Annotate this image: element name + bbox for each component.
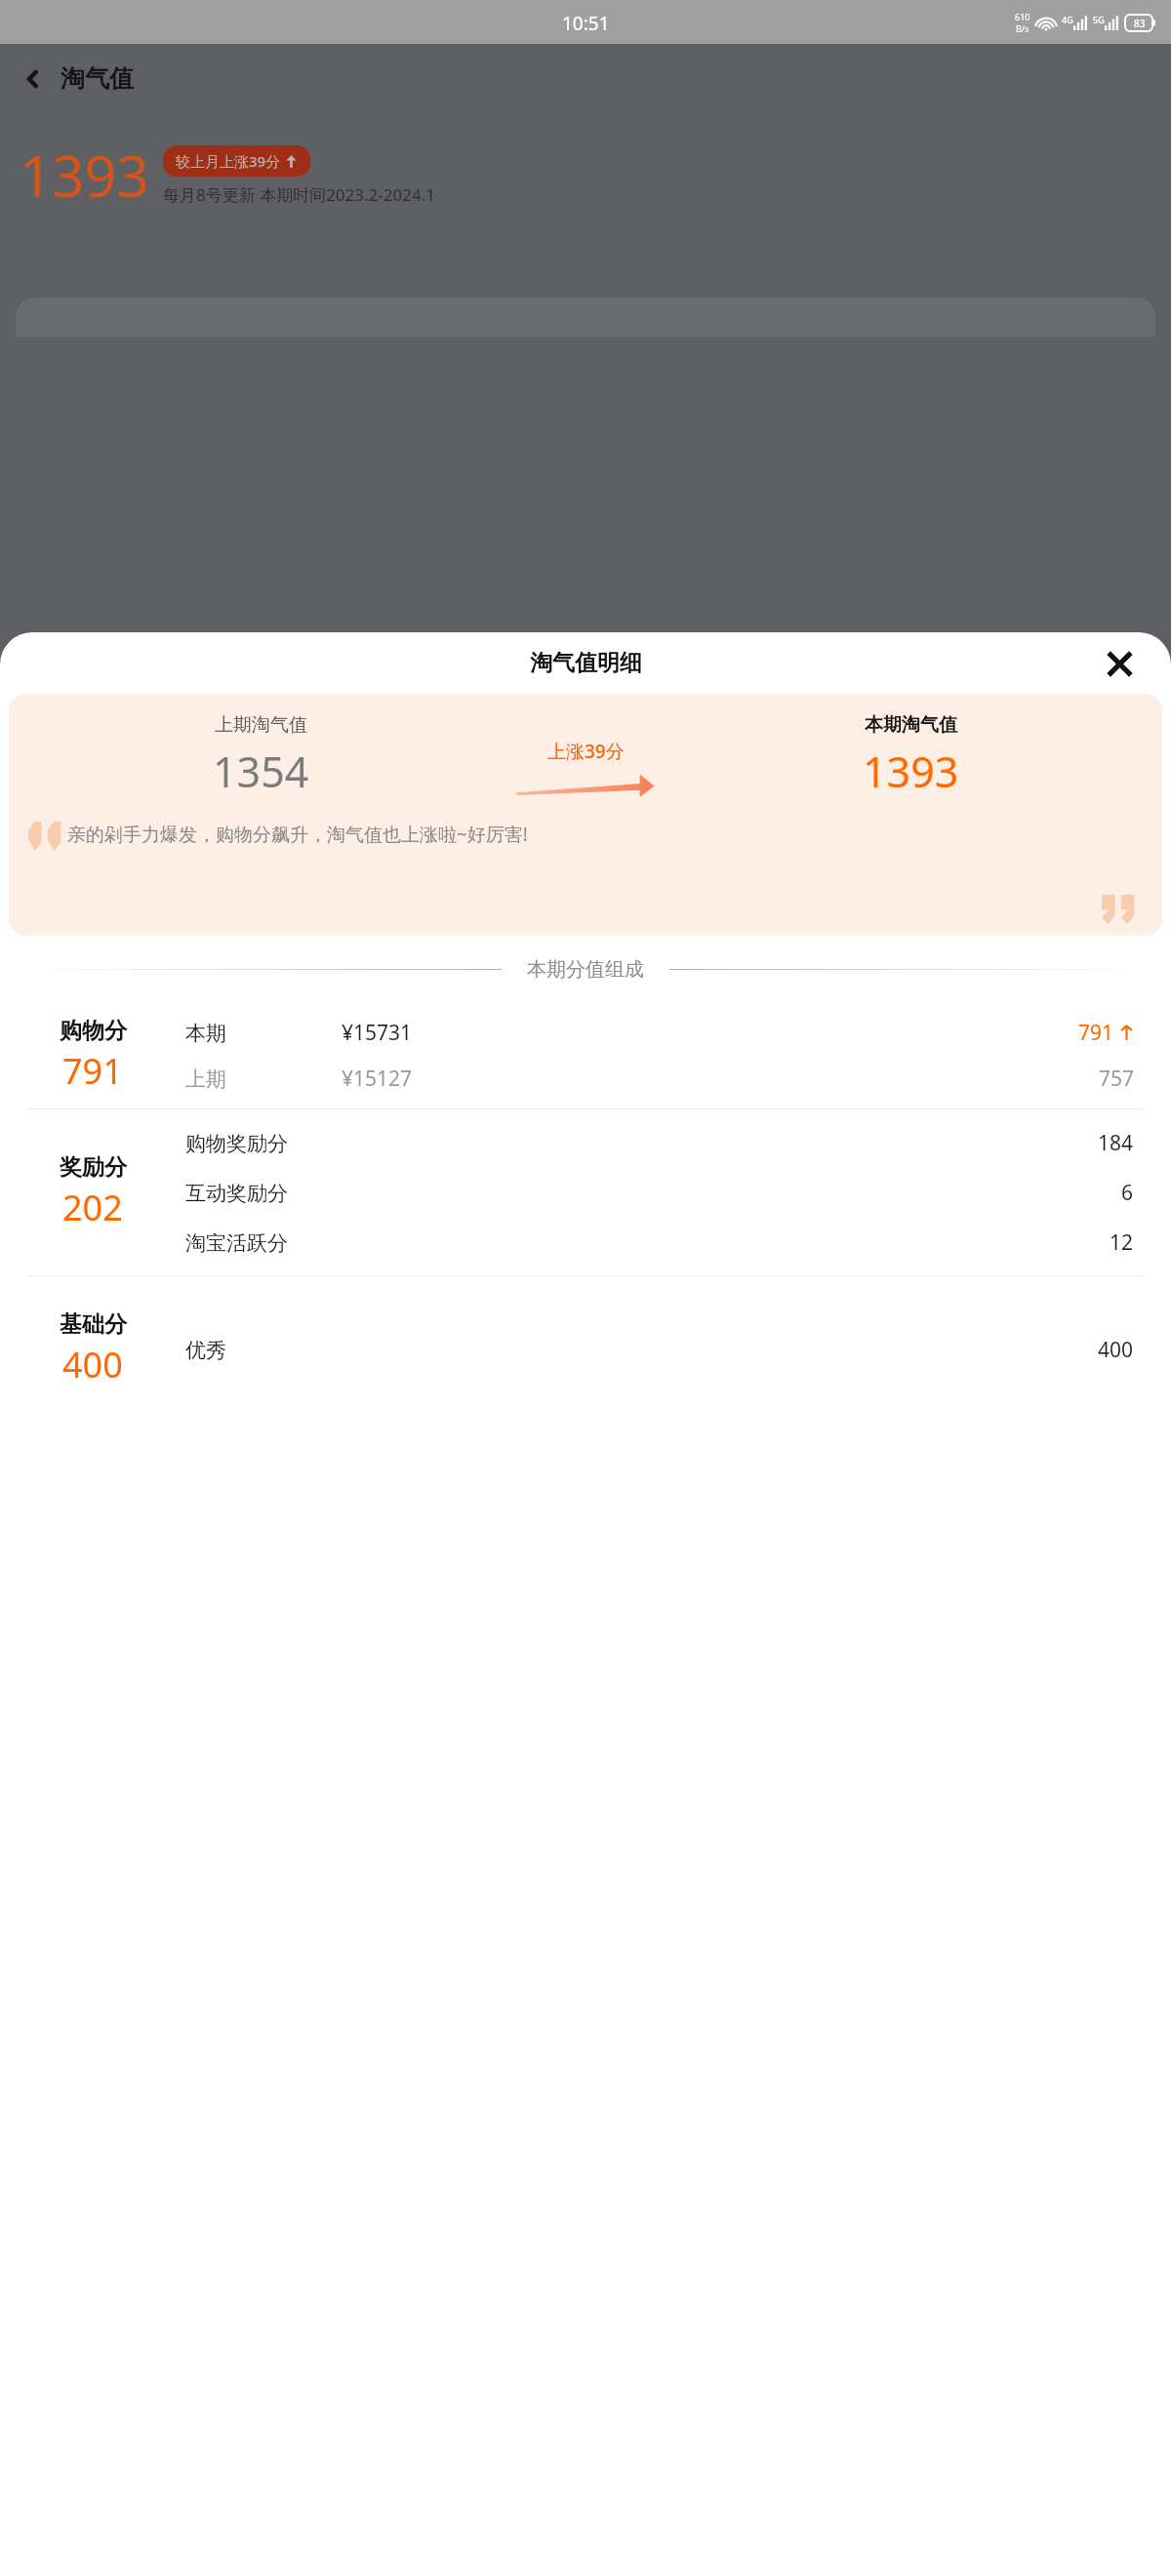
staticText: 1393 xyxy=(863,743,959,800)
staticText: 互动奖励分 xyxy=(185,1181,1121,1206)
staticText: 791 xyxy=(1078,1019,1114,1047)
staticText: 12 xyxy=(1110,1228,1134,1257)
staticText: ¥15127 xyxy=(342,1065,1007,1093)
staticText: 购物分 xyxy=(60,1017,127,1045)
staticText: ¥15731 xyxy=(342,1019,1007,1047)
staticText: 10:51 xyxy=(562,11,610,36)
button[interactable]: 购物分 xyxy=(0,1003,1171,1108)
staticText: 淘气值 xyxy=(61,63,134,94)
staticText: 6 xyxy=(1121,1179,1134,1207)
staticText: 上期淘气值 xyxy=(215,713,307,737)
staticText: 亲的剁手力爆发，购物分飙升，淘气值也上涨啦~好厉害! xyxy=(67,822,528,847)
staticText: 4G xyxy=(1062,14,1073,25)
staticText: 83 xyxy=(1134,17,1146,30)
staticText: 本期分值组成 xyxy=(527,957,644,982)
staticText: 202 xyxy=(62,1184,123,1231)
staticText: 1393 xyxy=(20,137,149,214)
button[interactable]: 基础分 xyxy=(0,1276,1171,1423)
staticText: 791 xyxy=(62,1047,123,1095)
staticText: 400 xyxy=(62,1341,123,1389)
staticText: 优秀 xyxy=(185,1338,1098,1363)
staticText: 每月8号更新 本期时间2023.2-2024.1 xyxy=(163,183,435,206)
staticText: 购物奖励分 xyxy=(185,1131,1098,1156)
staticText: 610 xyxy=(1015,11,1030,22)
staticText: 上涨39分 xyxy=(547,739,625,764)
staticText: 基础分 xyxy=(60,1310,127,1339)
staticText: 5G xyxy=(1093,14,1105,25)
staticText: 757 xyxy=(1007,1065,1134,1093)
staticText: B/s xyxy=(1016,22,1030,34)
staticText: 184 xyxy=(1098,1129,1134,1157)
staticText: 本期 xyxy=(185,1021,342,1046)
staticText: 较上月上涨39分 xyxy=(176,151,281,171)
staticText: 400 xyxy=(1098,1336,1134,1364)
button[interactable]: 关闭 xyxy=(1103,647,1136,680)
staticText: 淘气值明细 xyxy=(530,649,642,677)
button[interactable]: 奖励分 xyxy=(0,1109,1171,1275)
staticText: 上期 xyxy=(185,1067,342,1092)
staticText: 本期淘气值 xyxy=(865,713,957,737)
staticText: 淘宝活跃分 xyxy=(185,1230,1110,1256)
staticText: 奖励分 xyxy=(60,1153,127,1182)
staticText: 1354 xyxy=(213,743,309,800)
